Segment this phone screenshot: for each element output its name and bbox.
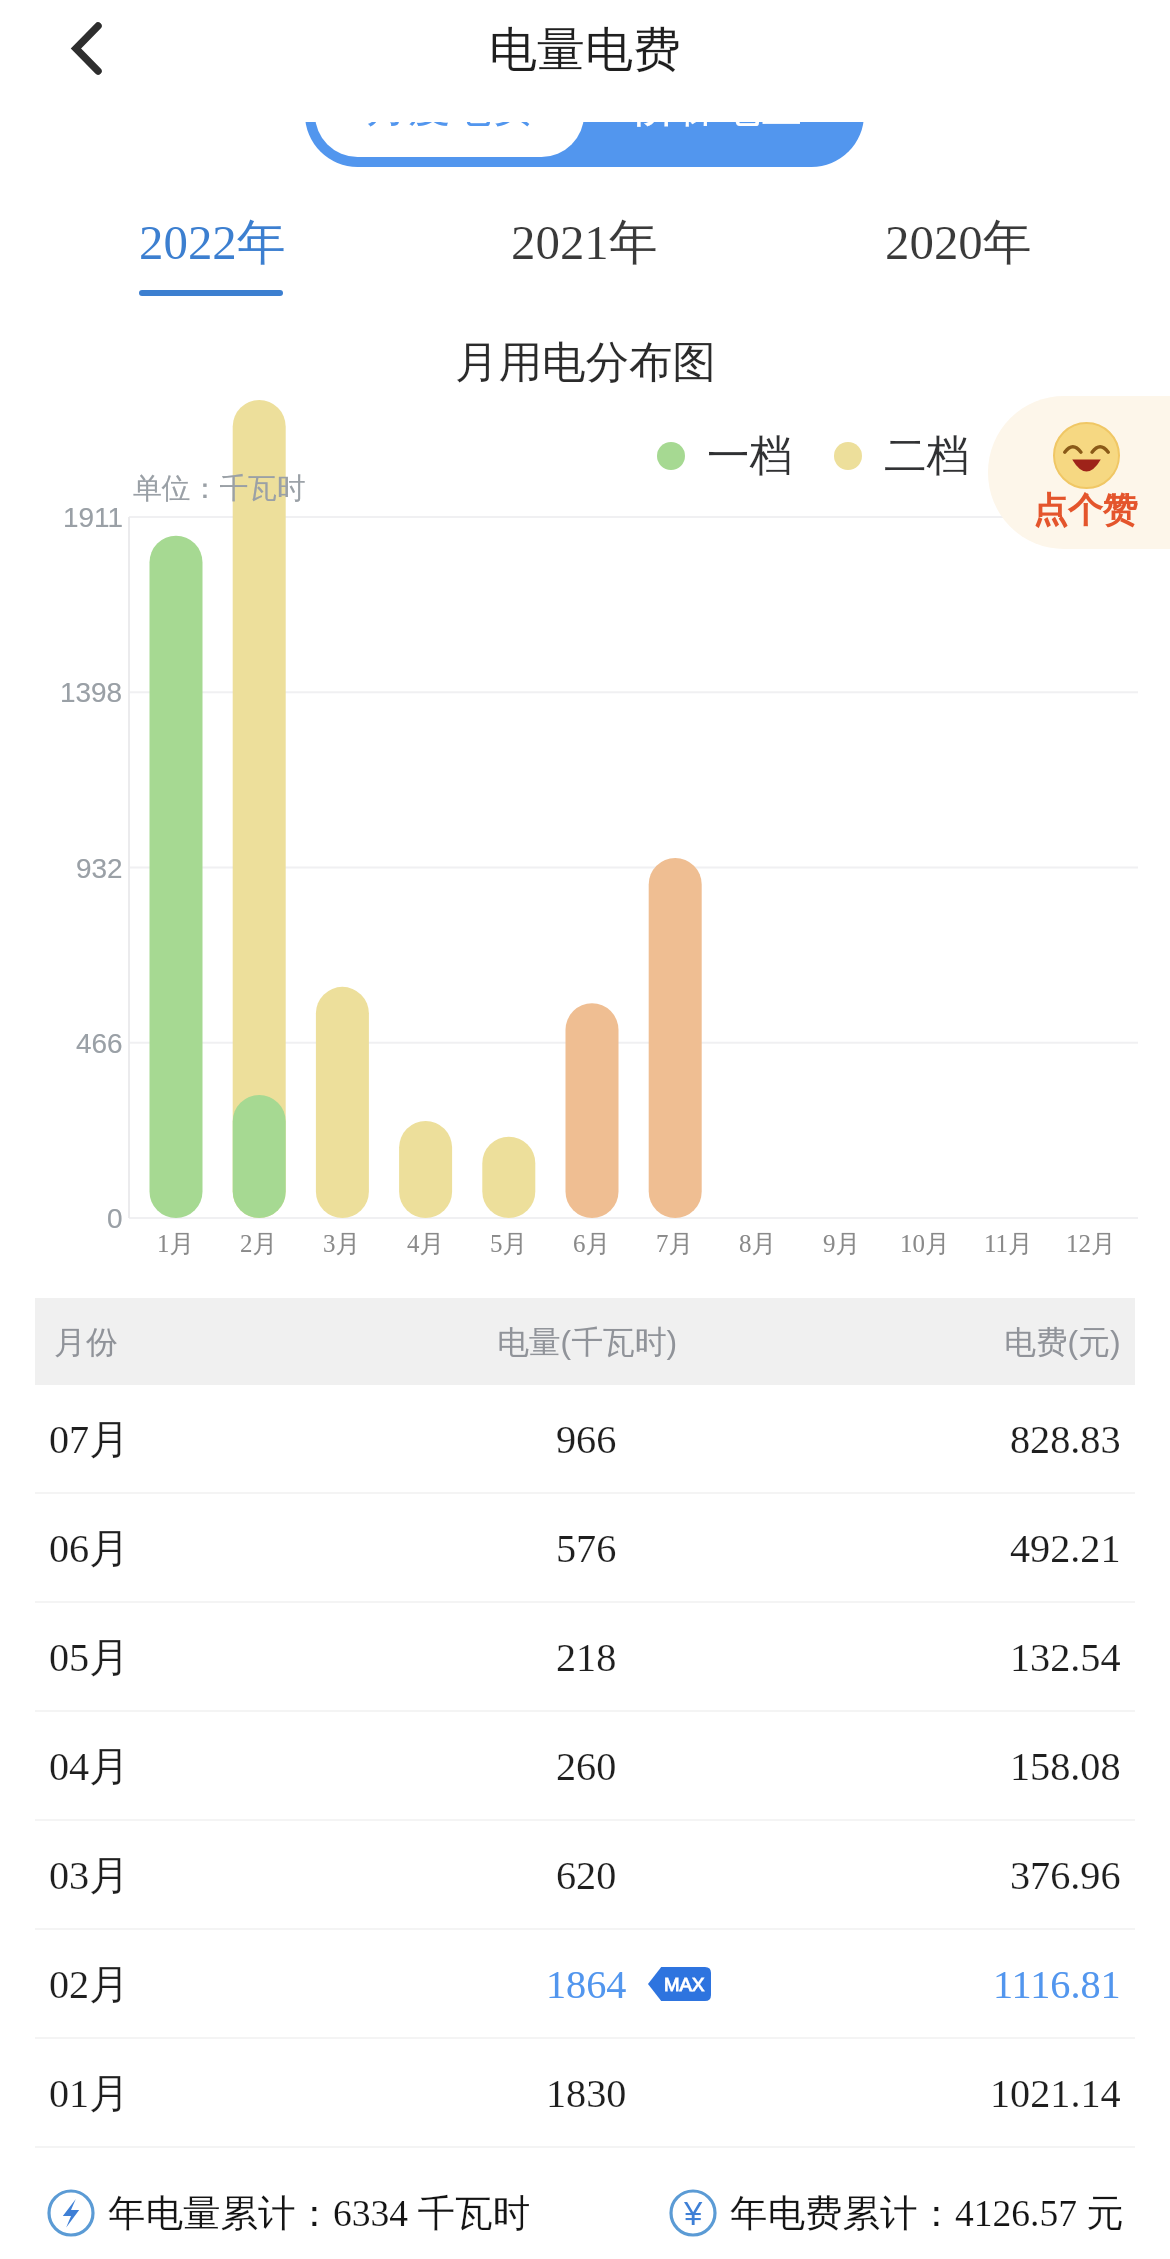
staticText: 06月 xyxy=(49,1523,130,1574)
staticText: 11月 xyxy=(984,1228,1033,1259)
staticText: 1116.81 xyxy=(993,1962,1121,2007)
staticText: 260 xyxy=(556,1744,617,1789)
button[interactable]: 01月 xyxy=(0,2039,1170,2148)
staticText: MAX xyxy=(664,1974,705,1995)
staticText: 04月 xyxy=(49,1741,130,1792)
staticText: 4月 xyxy=(407,1228,445,1259)
staticText: 单位：千瓦时 xyxy=(133,470,306,506)
button[interactable]: 04月 xyxy=(0,1712,1170,1821)
staticText: 02月 xyxy=(49,1959,130,2010)
button[interactable]: 阶梯电量 xyxy=(584,72,854,157)
staticText: 01月 xyxy=(49,2068,130,2119)
staticText: 3月 xyxy=(323,1228,361,1259)
staticText: 03月 xyxy=(49,1850,130,1901)
button[interactable]: 07月 xyxy=(0,1385,1170,1494)
staticText: 07月 xyxy=(49,1414,130,1465)
staticText: 月份 xyxy=(54,1322,118,1362)
staticText: 5月 xyxy=(490,1228,528,1259)
staticText: 132.54 xyxy=(1010,1635,1121,1680)
staticText: 年电量累计：6334 千瓦时 xyxy=(108,2190,530,2237)
staticText: 620 xyxy=(556,1853,617,1898)
staticText: 932 xyxy=(76,853,123,884)
staticText: 218 xyxy=(556,1635,617,1680)
staticText: 二档 xyxy=(884,429,970,483)
button[interactable]: 点个赞 xyxy=(988,396,1170,549)
staticText: 月度电费 xyxy=(366,81,534,134)
staticText: ¥ xyxy=(684,2195,703,2232)
staticText: 1021.14 xyxy=(990,2071,1121,2116)
staticText: 12月 xyxy=(1066,1228,1116,1259)
button[interactable]: 月度电费 xyxy=(315,72,584,157)
staticText: 158.08 xyxy=(1010,1744,1121,1789)
button[interactable]: 2022年 xyxy=(112,190,312,296)
staticText: 电量(千瓦时) xyxy=(497,1322,678,1362)
staticText: 376.96 xyxy=(1010,1853,1121,1898)
staticText: 1864 xyxy=(546,1962,627,2007)
staticText: 电量电费 xyxy=(489,20,681,80)
staticText: 年电费累计：4126.57 元 xyxy=(730,2190,1124,2237)
staticText: 1830 xyxy=(546,2071,627,2116)
staticText: 10月 xyxy=(900,1228,950,1259)
staticText: 9月 xyxy=(823,1228,861,1259)
button[interactable]: 2020年 xyxy=(858,190,1058,296)
staticText: 966 xyxy=(556,1417,617,1462)
staticText: 492.21 xyxy=(1010,1526,1121,1571)
button[interactable]: 03月 xyxy=(0,1821,1170,1930)
staticText: 1月 xyxy=(157,1228,195,1259)
staticText: 8月 xyxy=(739,1228,777,1259)
staticText: 828.83 xyxy=(1010,1417,1121,1462)
staticText: 2月 xyxy=(240,1228,278,1259)
button[interactable]: 02月 xyxy=(0,1930,1170,2039)
staticText: 05月 xyxy=(49,1632,130,1683)
staticText: 1398 xyxy=(60,677,123,708)
button[interactable]: 05月 xyxy=(0,1603,1170,1712)
staticText: 2021年 xyxy=(511,212,658,274)
staticText: 2020年 xyxy=(885,212,1032,274)
button[interactable]: 06月 xyxy=(0,1494,1170,1603)
staticText: 1911 xyxy=(63,502,123,533)
button[interactable]: Back xyxy=(53,13,120,84)
staticText: 2022年 xyxy=(139,212,286,274)
staticText: 7月 xyxy=(656,1228,694,1259)
staticText: 阶梯电量 xyxy=(635,81,803,134)
staticText: 一档 xyxy=(707,429,793,483)
staticText: 0 xyxy=(107,1203,123,1234)
staticText: 6月 xyxy=(573,1228,611,1259)
staticText: 466 xyxy=(76,1028,123,1059)
staticText: 点个赞 xyxy=(1033,488,1138,532)
staticText: 月用电分布图 xyxy=(455,335,716,390)
button[interactable]: 2021年 xyxy=(484,190,684,296)
staticText: 576 xyxy=(556,1526,617,1571)
staticText: 电费(元) xyxy=(1004,1322,1121,1362)
